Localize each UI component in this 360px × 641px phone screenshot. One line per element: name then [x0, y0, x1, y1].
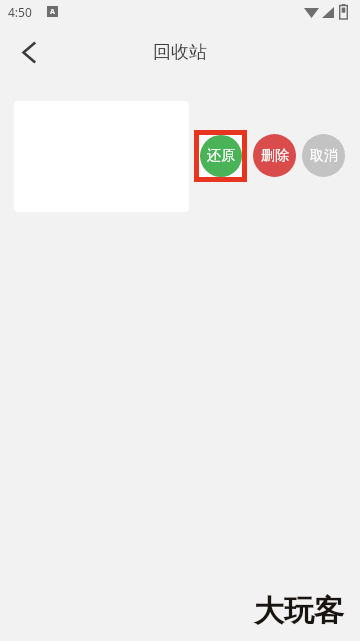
button[interactable]: Back	[6, 29, 52, 75]
staticText: 还原	[207, 147, 235, 165]
staticText: A	[50, 7, 55, 17]
staticText: 取消	[310, 147, 338, 165]
button[interactable]: 取消	[302, 134, 345, 177]
button[interactable]: 还原	[199, 135, 242, 177]
staticText: 回收站	[0, 41, 360, 64]
staticText: 大玩客	[254, 592, 344, 630]
staticText: 删除	[261, 147, 289, 165]
staticText: 4:50	[8, 4, 32, 20]
button[interactable]: 删除	[253, 134, 296, 177]
